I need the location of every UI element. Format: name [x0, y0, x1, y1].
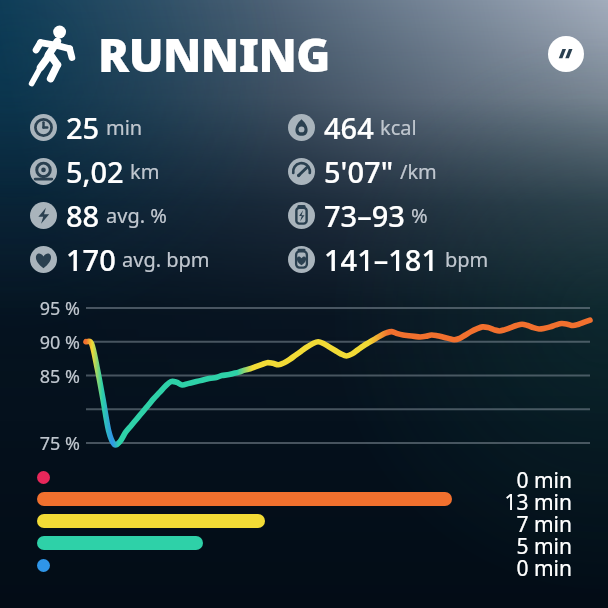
button[interactable]: 73–93 — [288, 196, 428, 235]
button[interactable]: 25 — [30, 108, 143, 147]
staticText: 141–181 — [324, 240, 439, 279]
staticText: 5,02 — [66, 152, 124, 191]
staticText: 95 % — [39, 296, 80, 321]
staticText: 5 min — [516, 532, 572, 554]
staticText: avg. % — [106, 202, 167, 229]
button[interactable]: 88 — [30, 196, 167, 235]
staticText: 464 — [324, 108, 374, 147]
staticText: 88 — [66, 196, 100, 235]
staticText: bpm — [445, 246, 489, 273]
button[interactable]: 464 — [288, 108, 417, 147]
staticText: 85 % — [39, 364, 80, 389]
staticText: 0 min — [516, 554, 572, 576]
staticText: 7 min — [516, 510, 572, 532]
button[interactable]: 0 min — [0, 466, 608, 488]
staticText: % — [411, 202, 428, 229]
button[interactable]: 141–181 — [288, 240, 489, 279]
button[interactable]: 0 min — [0, 554, 608, 576]
staticText: 0 min — [516, 466, 572, 488]
staticText: /km — [400, 158, 437, 185]
staticText: 170 — [66, 240, 116, 279]
button[interactable]: 5'07" — [288, 152, 437, 191]
button[interactable]: 13 min — [0, 488, 608, 510]
button[interactable]: 5,02 — [30, 152, 160, 191]
button[interactable]: App logo — [548, 36, 584, 72]
staticText: 75 % — [39, 431, 80, 456]
staticText: min — [106, 114, 143, 141]
button[interactable]: 5 min — [0, 532, 608, 554]
staticText: avg. bpm — [122, 246, 210, 273]
staticText: 25 — [66, 108, 100, 147]
staticText: km — [130, 158, 160, 185]
staticText: 5'07" — [324, 152, 394, 191]
button[interactable]: 170 — [30, 240, 210, 279]
staticText: kcal — [380, 114, 417, 141]
staticText: 13 min — [504, 488, 572, 510]
staticText: 73–93 — [324, 196, 405, 235]
staticText: 90 % — [39, 330, 80, 355]
button[interactable]: 7 min — [0, 510, 608, 532]
staticText: RUNNING — [98, 23, 330, 86]
